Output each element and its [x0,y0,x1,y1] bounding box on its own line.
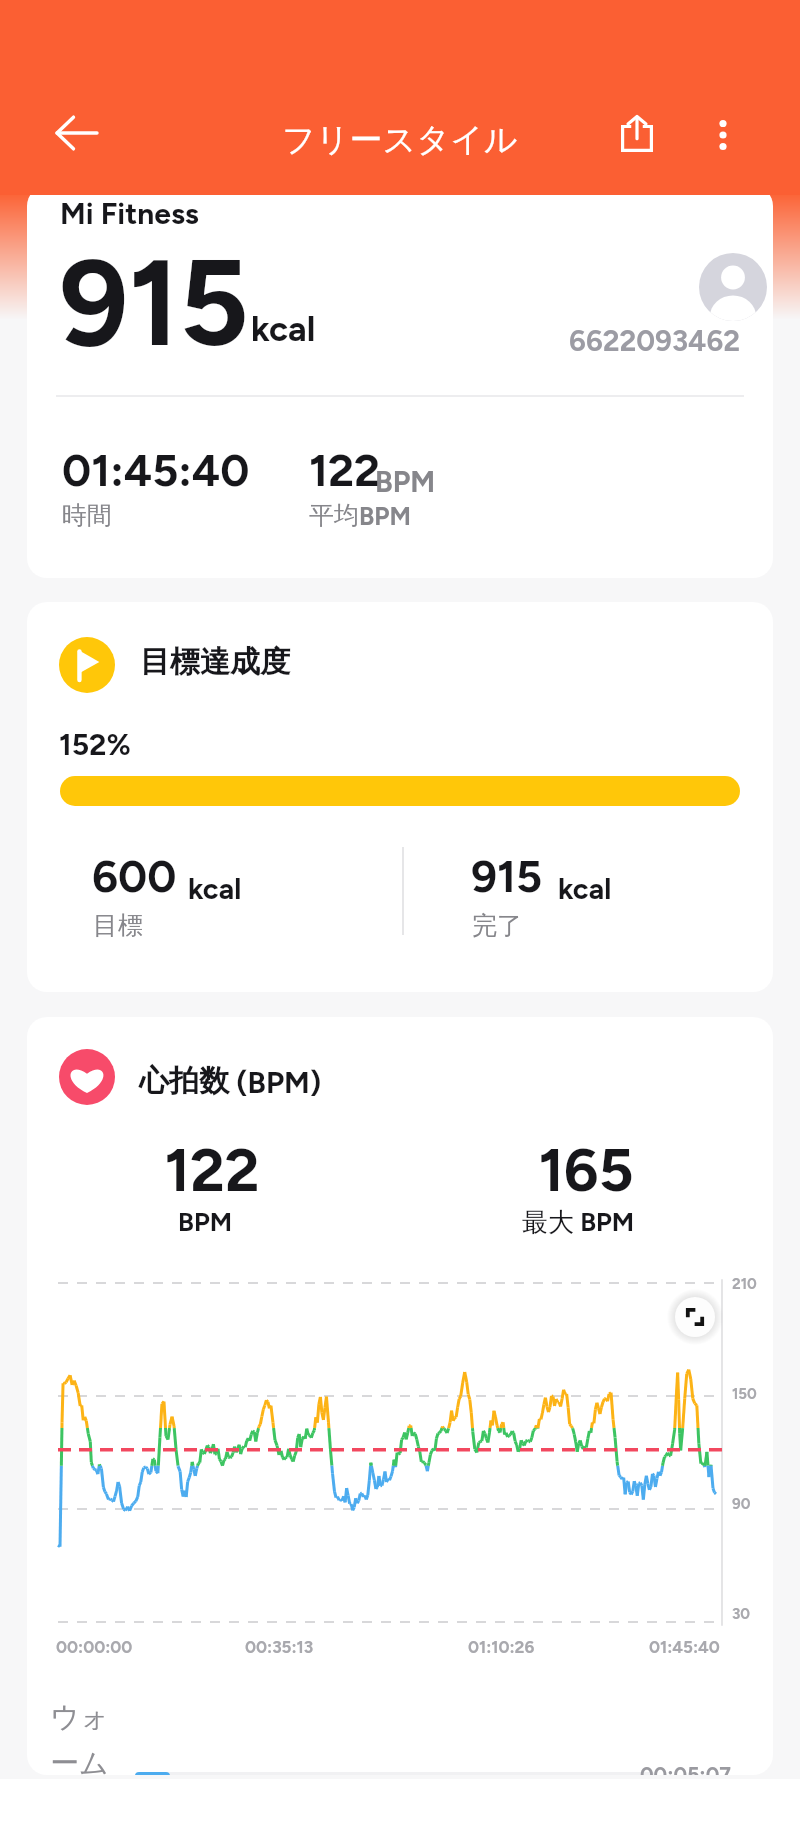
staticText: 00:35:13 [245,1637,314,1657]
staticText: 150 [732,1385,757,1403]
staticText: フリースタイル [282,119,518,161]
button[interactable]: Share [605,102,667,164]
staticText: 915 [59,231,249,375]
staticText: 915 [471,849,543,903]
button[interactable]: More options [692,104,754,166]
button[interactable]: Back [44,100,110,166]
staticText: 01:45:40 [649,1637,720,1657]
staticText: 600 [92,849,177,903]
staticText: 152% [59,726,131,762]
staticText: 01:45:40 [62,443,250,497]
staticText: 時間 [62,500,112,531]
staticText: 平均 [309,500,359,531]
staticText: 目標達成度 [140,643,290,681]
staticText: kcal [251,308,316,350]
staticText: 6622093462 [440,323,740,358]
staticText: 心拍数 [139,1062,229,1100]
staticText: 00:05:07 [640,1762,731,1775]
staticText: BPM [359,501,411,531]
staticText: (BPM) [229,1064,322,1100]
staticText: 30 [732,1605,751,1623]
staticText: 122 [309,443,381,497]
staticText: 90 [732,1495,751,1513]
button[interactable]: Full screen [675,1297,715,1337]
staticText: BPM [375,464,436,499]
staticText: 目標 [93,910,143,941]
staticText: 165 [486,1134,686,1206]
staticText: BPM [105,1206,305,1237]
staticText: 00:00:00 [56,1637,133,1657]
staticText: 01:10:26 [468,1637,535,1657]
staticText: 122 [112,1134,312,1206]
staticText: 完了 [472,910,522,941]
staticText: Mi Fitness [60,195,199,231]
staticText: 最大 BPM [478,1206,678,1239]
staticText: kcal [558,871,612,906]
staticText: ウォ ーム [50,1699,130,1775]
staticText: 210 [732,1275,757,1293]
staticText: kcal [188,871,242,906]
